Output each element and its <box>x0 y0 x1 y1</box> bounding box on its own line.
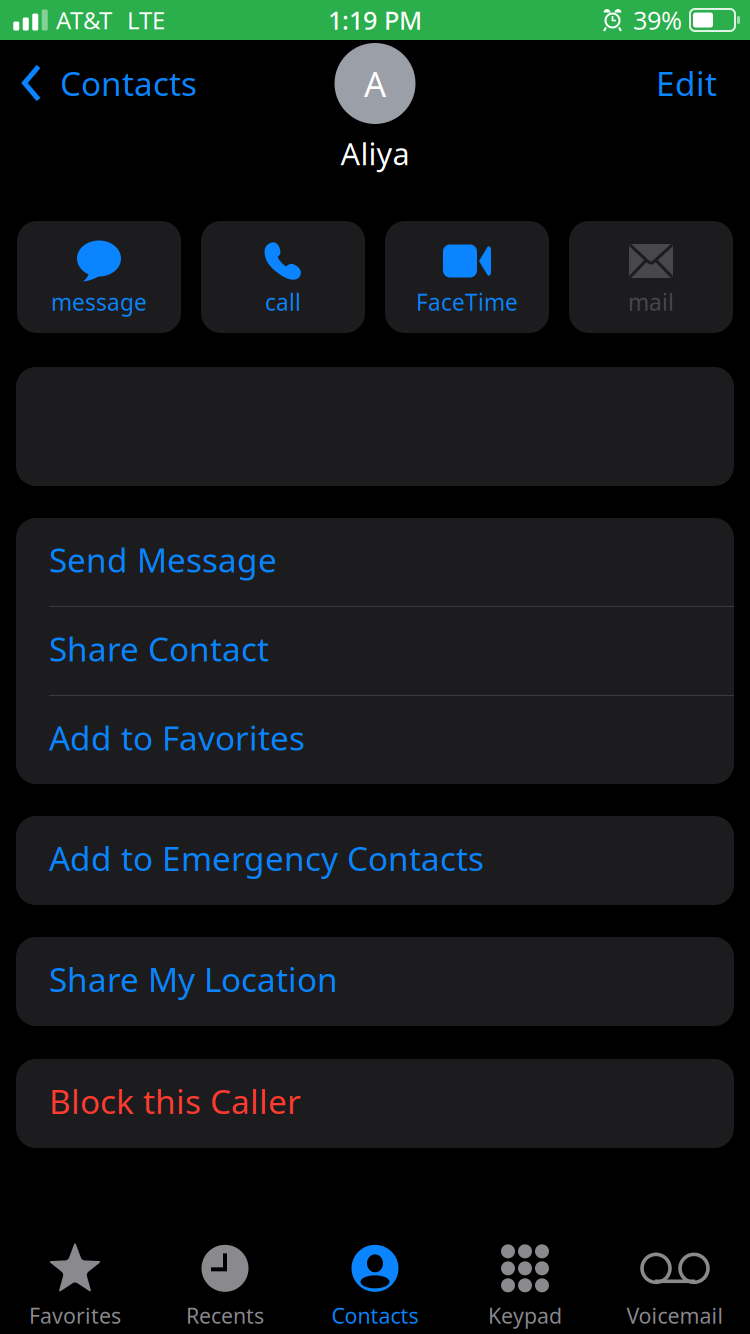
button[interactable]: Recents <box>150 1240 300 1334</box>
staticText: Voicemail <box>626 1301 723 1330</box>
staticText: AT&T <box>56 4 112 36</box>
button[interactable]: Keypad <box>450 1240 600 1334</box>
button[interactable]: call <box>201 221 365 333</box>
staticText: A <box>364 60 386 106</box>
button[interactable]: Send Message <box>16 518 734 606</box>
button[interactable]: Share My Location <box>16 937 734 1026</box>
button[interactable]: Contacts <box>300 1240 450 1334</box>
staticText: Favorites <box>29 1301 121 1330</box>
button[interactable]: Share Contact <box>16 607 734 695</box>
button[interactable]: Contacts <box>0 57 211 109</box>
staticText: 1:19 PM <box>328 3 422 37</box>
staticText: 39% <box>633 3 682 37</box>
staticText: call <box>265 287 301 317</box>
button[interactable]: Edit <box>634 57 750 109</box>
staticText: Add to Favorites <box>49 715 305 760</box>
button[interactable]: FaceTime <box>385 221 549 333</box>
staticText: LTE <box>127 4 165 36</box>
staticText: Send Message <box>49 537 277 582</box>
staticText: Recents <box>186 1301 264 1330</box>
button[interactable]: message <box>17 221 181 333</box>
button[interactable]: Voicemail <box>600 1240 750 1334</box>
staticText: FaceTime <box>416 287 518 317</box>
staticText: Edit <box>656 61 717 105</box>
staticText: Contacts <box>331 1301 418 1330</box>
button[interactable]: Add to Favorites <box>16 696 734 784</box>
staticText: message <box>51 287 147 317</box>
button[interactable]: Favorites <box>0 1240 150 1334</box>
staticText: Contacts <box>60 61 197 105</box>
staticText: Share My Location <box>49 957 338 1001</box>
staticText: Share Contact <box>49 626 269 671</box>
staticText: Block this Caller <box>49 1079 301 1123</box>
button[interactable]: mail <box>569 221 733 333</box>
button[interactable]: Block this Caller <box>16 1059 734 1148</box>
staticText: mail <box>628 287 674 317</box>
staticText: Add to Emergency Contacts <box>49 836 484 880</box>
staticText: Aliya <box>340 133 409 174</box>
staticText: Keypad <box>488 1301 562 1330</box>
button[interactable]: Add to Emergency Contacts <box>16 816 734 905</box>
